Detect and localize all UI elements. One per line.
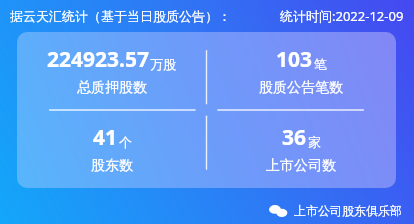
- button[interactable]: WeChat 上市公司股东俱乐部: [269, 203, 402, 218]
- staticText: 上市公司股东俱乐部: [294, 203, 402, 218]
- staticText: 个: [119, 134, 132, 150]
- button[interactable]: 224923.57: [47, 45, 176, 97]
- button[interactable]: 103: [259, 45, 343, 97]
- staticText: 笔: [314, 56, 327, 72]
- button[interactable]: 41: [91, 123, 133, 175]
- staticText: 据云天汇统计（基于当日股质公告）：: [10, 8, 231, 24]
- staticText: 万股: [150, 56, 176, 72]
- staticText: 103: [276, 45, 313, 74]
- staticText: 家: [308, 134, 321, 150]
- staticText: 总质押股数: [77, 79, 147, 97]
- staticText: 36: [282, 123, 307, 152]
- staticText: 上市公司数: [266, 157, 336, 175]
- staticText: 股质公告笔数: [259, 79, 343, 97]
- staticText: 224923.57: [47, 45, 149, 74]
- button[interactable]: 36: [266, 123, 336, 175]
- staticText: 41: [93, 123, 118, 152]
- staticText: 统计时间:2022-12-09: [280, 7, 404, 25]
- staticText: 股东数: [91, 157, 133, 175]
